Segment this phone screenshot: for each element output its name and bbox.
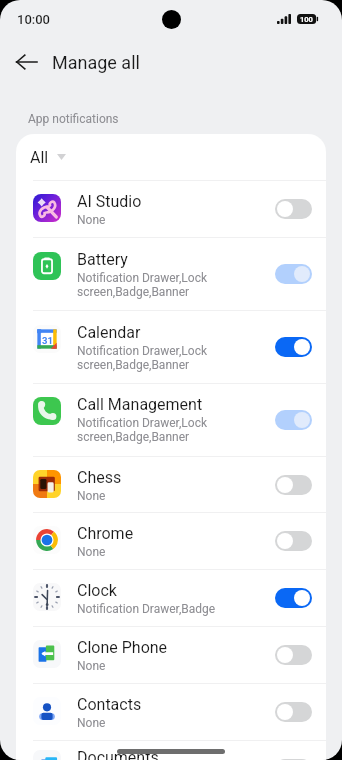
staticText: Notification Drawer,Lock screen,Badge,Ba… (77, 344, 207, 372)
button[interactable]: Toggle notifications (275, 702, 312, 722)
button[interactable]: Toggle notifications (275, 199, 312, 219)
button[interactable]: Chrome (16, 513, 326, 569)
staticText: Call Management (77, 395, 203, 414)
button[interactable]: Documents (16, 741, 326, 760)
staticText: Documents (77, 748, 159, 760)
button[interactable]: Clock (16, 570, 326, 626)
staticText: None (77, 659, 106, 673)
staticText: Chess (77, 468, 122, 487)
staticText: 31 (42, 335, 53, 346)
staticText: Notification Drawer,Lock screen,Badge,Ba… (77, 416, 207, 444)
staticText: Clock (77, 581, 117, 600)
staticText: None (77, 716, 106, 730)
staticText: AI Studio (77, 192, 142, 211)
staticText: Chrome (77, 524, 134, 543)
staticText: Battery (77, 250, 128, 269)
button[interactable]: 31 (16, 311, 326, 383)
button[interactable]: Toggle notifications (275, 337, 312, 357)
staticText: None (77, 213, 106, 227)
staticText: Clone Phone (77, 638, 168, 657)
button[interactable]: AI Studio (16, 181, 326, 237)
button[interactable]: Back (4, 40, 48, 84)
button[interactable]: Toggle notifications (275, 264, 312, 284)
staticText: Notification Drawer,Badge (77, 602, 216, 616)
button[interactable]: Toggle notifications (275, 531, 312, 551)
button[interactable]: Toggle notifications (275, 588, 312, 608)
staticText: Manage all (52, 52, 140, 73)
button[interactable]: Call Management (16, 384, 326, 456)
staticText: 10:00 (17, 12, 50, 27)
button[interactable]: Toggle notifications (275, 645, 312, 665)
staticText: All (30, 148, 49, 167)
staticText: None (77, 545, 106, 559)
staticText: Calendar (77, 323, 141, 342)
button[interactable]: Contacts (16, 684, 326, 740)
button[interactable]: Clone Phone (16, 627, 326, 683)
button[interactable]: Battery (16, 238, 326, 310)
staticText: None (77, 489, 106, 503)
staticText: 100 (300, 15, 313, 24)
button[interactable]: Toggle notifications (275, 759, 312, 760)
button[interactable]: All (16, 134, 326, 180)
staticText: Notification Drawer,Lock screen,Badge,Ba… (77, 271, 207, 299)
staticText: App notifications (28, 112, 119, 126)
button[interactable]: Chess (16, 457, 326, 512)
staticText: Contacts (77, 695, 142, 714)
button[interactable]: Toggle notifications (275, 410, 312, 430)
button[interactable]: Toggle notifications (275, 475, 312, 495)
